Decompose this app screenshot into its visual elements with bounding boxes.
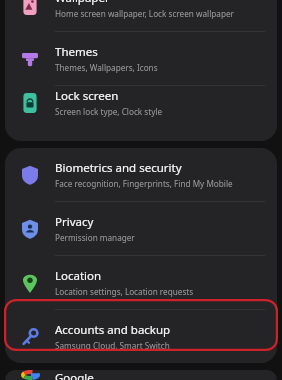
staticText: Biometrics and security [55,160,182,176]
staticText: Samsung Cloud, Smart Switch [55,340,170,351]
button[interactable]: Accounts and backup [5,310,277,363]
staticText: Location settings, Location requests [55,286,194,297]
staticText: Location [55,268,102,284]
staticText: Lock screen [55,88,119,104]
staticText: Wallpaper [55,0,110,6]
staticText: Screen lock type, Clock style [55,106,163,117]
staticText: Themes, Wallpapers, Icons [55,62,158,73]
staticText: Home screen wallpaper, Lock screen wallp… [55,8,234,19]
staticText: Face recognition, Fingerprints, Find My … [55,178,233,189]
staticText: Privacy [55,214,94,230]
button[interactable]: Privacy [5,202,277,255]
staticText: Accounts and backup [55,322,171,338]
staticText: Themes [55,44,98,60]
button[interactable]: Themes [5,32,277,85]
button[interactable]: Location [5,256,277,309]
button[interactable]: Lock screen [5,86,277,119]
other: Accounts and backup highlight [4,299,278,351]
staticText: Permission manager [55,232,135,243]
button[interactable]: Biometrics and security [5,148,277,201]
staticText: Google [55,370,94,380]
button[interactable]: Google [5,370,277,380]
button[interactable]: Wallpaper [5,0,277,31]
